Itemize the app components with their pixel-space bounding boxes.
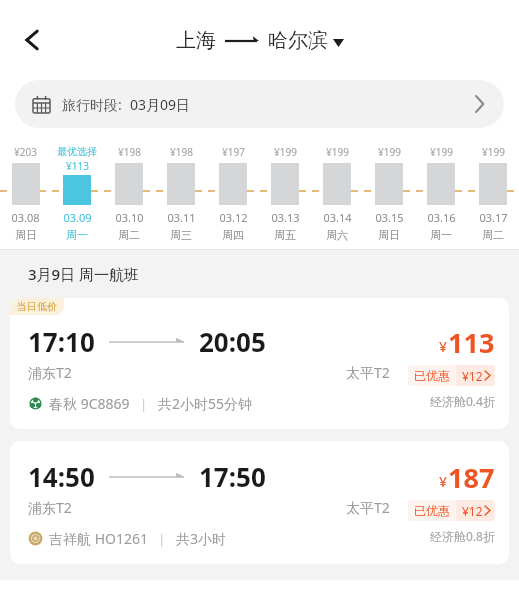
button[interactable]: ¥198 [155,144,207,242]
staticText: 113 [448,324,495,361]
staticText: 经济舱0.8折 [430,528,495,544]
staticText: 哈尔滨 [268,28,328,53]
button[interactable]: ¥199 [467,144,519,242]
staticText: ¥ [439,472,448,491]
staticText: 03.15 [375,210,404,225]
staticText: 03.10 [115,210,144,225]
staticText: ¥198 [170,145,193,159]
staticText: 经济舱0.4折 [430,393,495,409]
staticText: 太平T2 [346,363,390,382]
staticText: 03.14 [323,210,352,225]
staticText: 旅行时段: [62,95,122,114]
staticText: 03月09日 [130,95,191,114]
staticText: 周一 [430,228,452,242]
staticText: ¥113 [66,159,89,173]
button[interactable]: Back [6,14,58,66]
staticText: 14:50 [28,459,95,494]
staticText: 已优惠 [414,503,450,518]
staticText: ¥ [439,337,448,356]
staticText: | [158,530,166,548]
staticText: 周六 [326,228,348,242]
staticText: 3月9日 周一航班 [28,264,140,284]
staticText: 当日低价 [17,300,57,313]
staticText: 周日 [378,228,400,242]
staticText: 03.09 [63,210,92,225]
button[interactable]: 上海 [176,28,344,53]
staticText: 浦东T2 [28,363,72,382]
staticText: ¥199 [326,145,349,159]
button[interactable]: ¥199 [363,144,415,242]
button[interactable]: 旅行时段: [15,80,504,128]
staticText: 周二 [118,228,140,242]
staticText: 03.08 [11,210,40,225]
button[interactable]: ¥203 [0,144,51,242]
button[interactable]: ¥199 [311,144,363,242]
staticText: 共3小时 [176,529,227,548]
staticText: 吉祥航 HO1261 [49,529,148,548]
staticText: 最优选择 [57,145,97,158]
staticText: 20:05 [199,324,266,359]
staticText: 浦东T2 [28,498,72,517]
staticText: 周日 [15,228,37,242]
staticText: 已优惠 [414,368,450,383]
staticText: ¥198 [118,145,141,159]
staticText: 03.13 [271,210,300,225]
staticText: 周三 [170,228,192,242]
staticText: ¥199 [430,145,453,159]
staticText: ¥199 [378,145,401,159]
staticText: 17:50 [199,459,266,494]
button[interactable]: 14:50 [10,441,509,564]
button[interactable]: ¥198 [103,144,155,242]
staticText: 上海 [176,28,216,53]
button[interactable]: ¥197 [207,144,259,242]
staticText: 周一 [66,228,88,242]
staticText: 周五 [274,228,296,242]
button[interactable]: ¥199 [415,144,467,242]
staticText: 187 [448,459,495,496]
staticText: | [140,395,148,413]
staticText: 03.17 [479,210,508,225]
button[interactable]: ¥199 [259,144,311,242]
staticText: ¥12 [462,503,483,519]
staticText: 03.12 [219,210,248,225]
staticText: 共2小时55分钟 [158,394,253,413]
staticText: 03.16 [427,210,456,225]
button[interactable]: 已优惠 [408,365,495,386]
button[interactable]: 最优选择 [51,144,103,242]
button[interactable]: 当日低价 [10,298,509,429]
staticText: 17:10 [28,324,95,359]
staticText: 周四 [222,228,244,242]
staticText: ¥199 [274,145,297,159]
staticText: 周二 [482,228,504,242]
staticText: 春秋 9C8869 [49,394,130,413]
staticText: ¥199 [482,145,505,159]
staticText: ¥203 [14,145,37,159]
staticText: ¥12 [462,368,483,384]
button[interactable]: 已优惠 [408,500,495,521]
staticText: 03.11 [167,210,196,225]
staticText: ¥197 [222,145,245,159]
staticText: 太平T2 [346,498,390,517]
